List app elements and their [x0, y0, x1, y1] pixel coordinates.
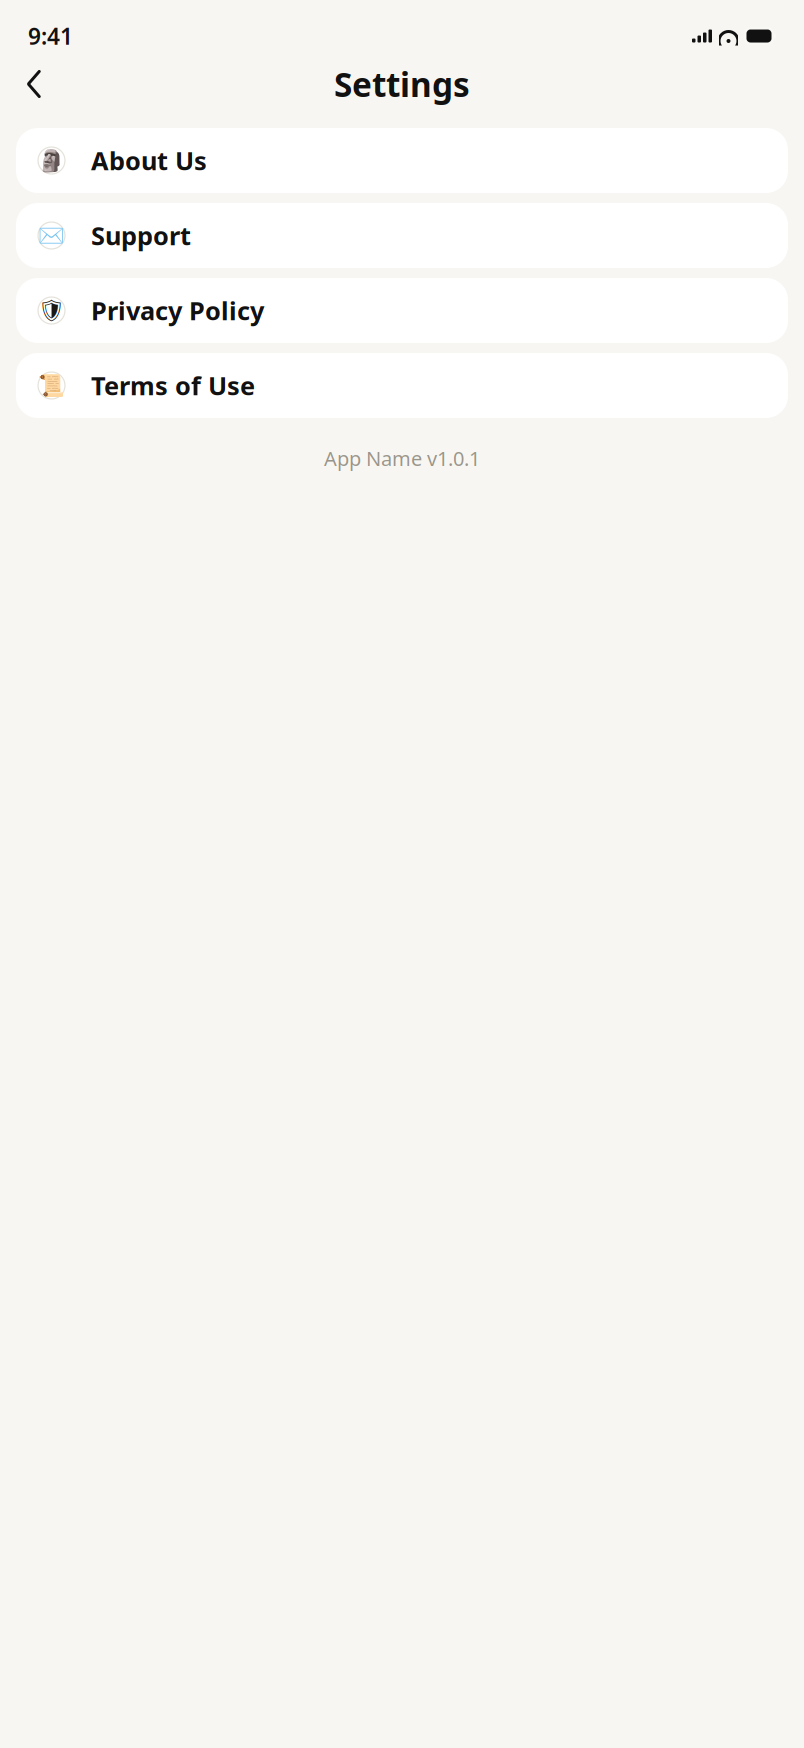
button[interactable]: Back — [12, 62, 56, 106]
staticText: About Us — [91, 144, 207, 177]
button[interactable]: 🗿 — [16, 128, 788, 193]
staticText: Terms of Use — [91, 369, 255, 402]
staticText: 📜 — [38, 373, 65, 398]
staticText: App Name v1.0.1 — [324, 445, 480, 472]
staticText: Support — [91, 219, 191, 252]
button[interactable]: 🛡 — [16, 278, 788, 343]
staticText: 🛡 — [38, 298, 65, 323]
staticText: ✉️ — [38, 223, 65, 248]
staticText: 9:41 — [28, 21, 73, 51]
staticText: Privacy Policy — [91, 294, 264, 327]
staticText: 🗿 — [38, 148, 65, 173]
staticText: Settings — [334, 62, 470, 106]
button[interactable]: 📜 — [16, 353, 788, 418]
button[interactable]: ✉️ — [16, 203, 788, 268]
